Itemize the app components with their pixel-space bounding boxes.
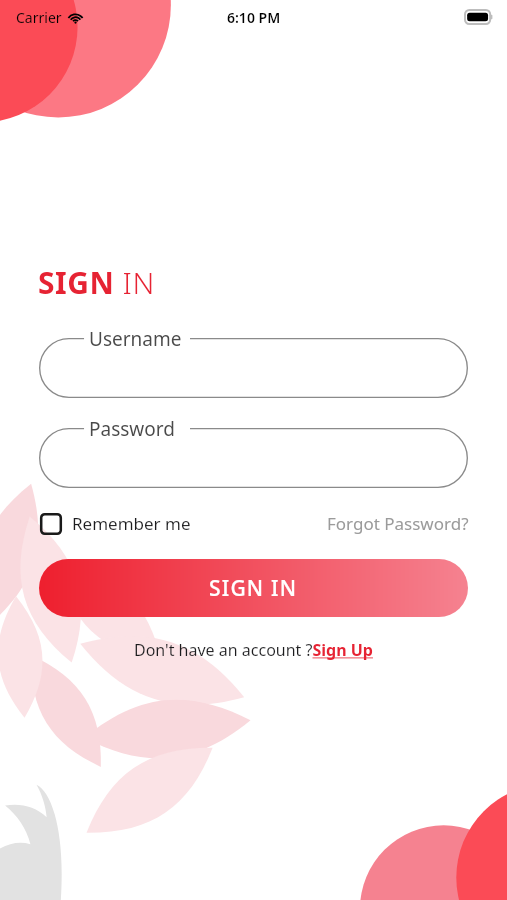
button[interactable]: Username [39,338,468,398]
button[interactable]: Forgot Password? [327,512,469,535]
button[interactable]: Remember me [40,512,191,535]
staticText: Don't have an account ?Sign Up [134,639,373,661]
staticText: Username [89,326,182,352]
staticText: Password [89,416,175,442]
staticText: SIGN IN [38,262,155,303]
button[interactable]: SIGN IN [39,559,468,617]
staticText: SIGN IN [209,574,298,603]
button[interactable]: Don't have an account ?Sign Up [0,639,507,661]
staticText: Carrier [16,8,62,27]
staticText: 6:10 PM [227,8,281,27]
button[interactable]: Password [39,428,468,488]
staticText: Forgot Password? [327,512,469,535]
staticText: Remember me [72,512,191,535]
